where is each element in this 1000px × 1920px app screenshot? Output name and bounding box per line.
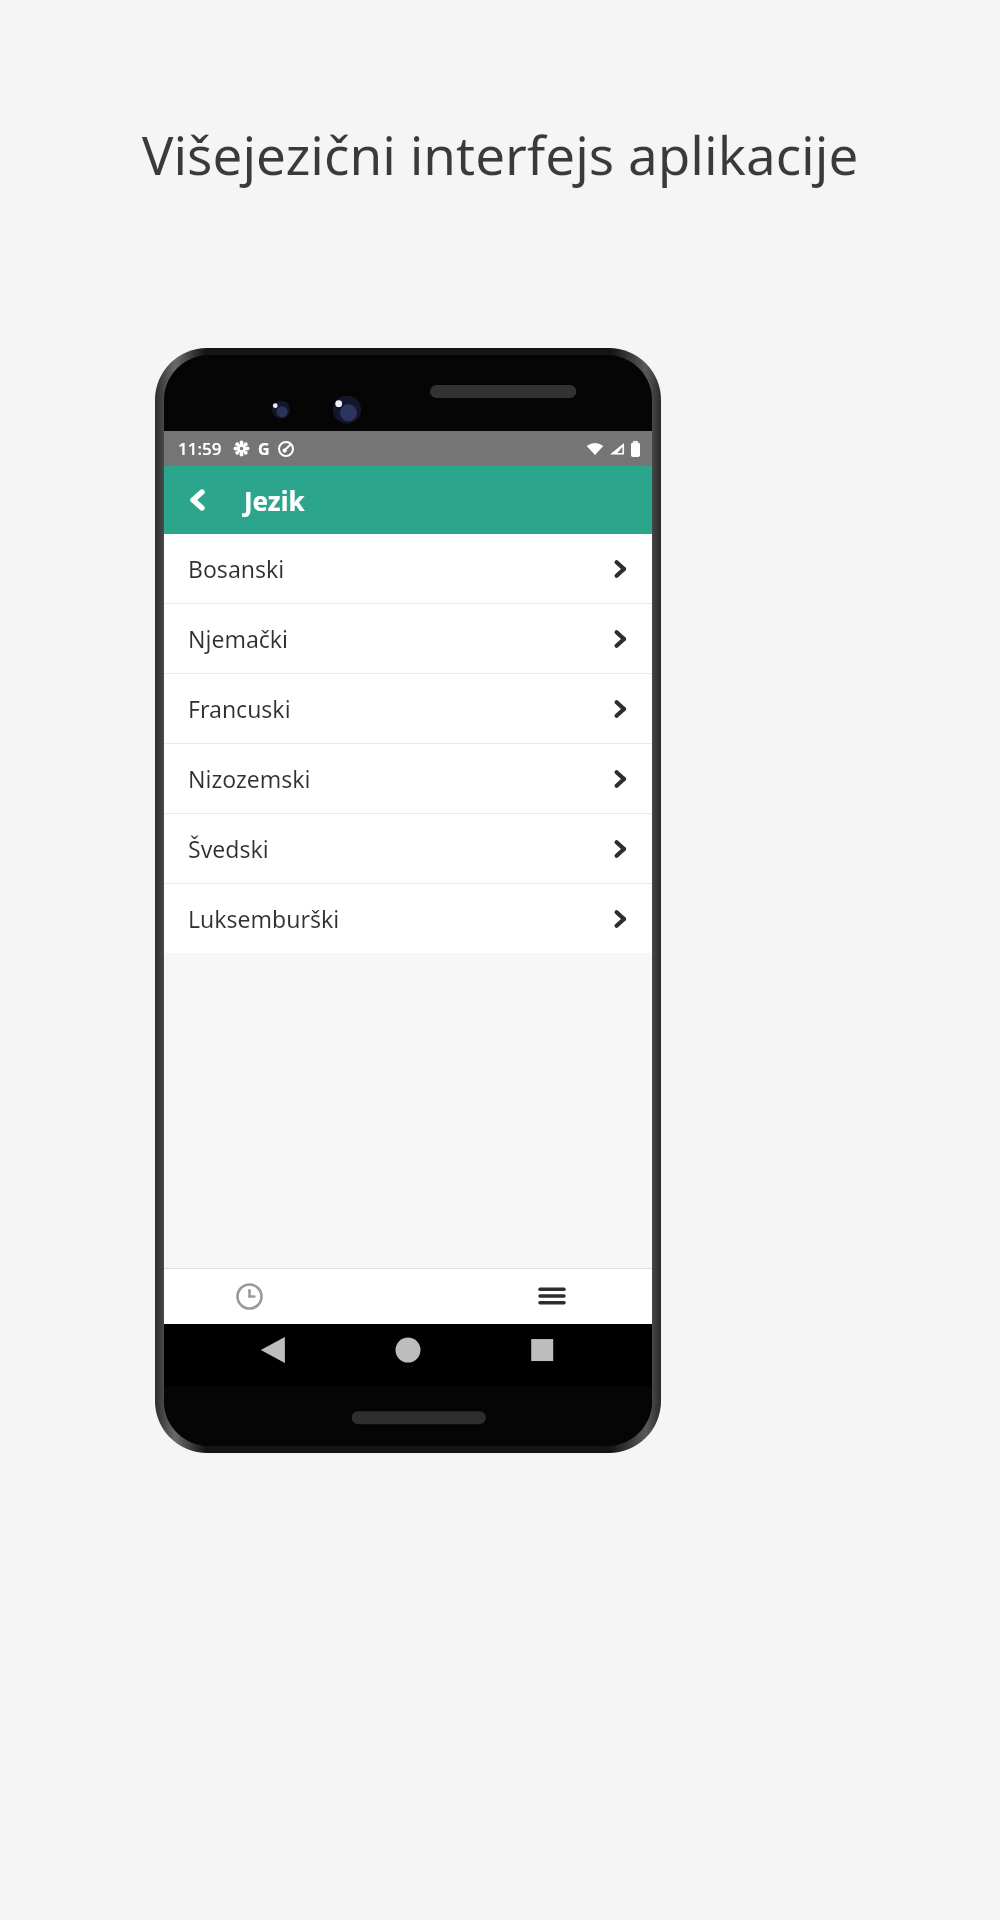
staticText: Bosanski [188,553,285,584]
button[interactable]: Luksemburški [164,884,652,953]
staticText: Švedski [188,833,269,864]
button[interactable]: Njemački [164,604,652,673]
button[interactable]: Bosanski [164,534,652,603]
staticText: Višejezični interfejs aplikacije [90,118,910,190]
staticText: Jezik [244,483,305,518]
button[interactable]: History [225,1272,273,1320]
button[interactable]: Francuski [164,674,652,743]
button[interactable]: Menu [528,1272,576,1320]
staticText: G [258,438,270,460]
button[interactable]: Nizozemski [164,744,652,813]
staticText: Francuski [188,693,291,724]
staticText: Luksemburški [188,903,340,934]
staticText: Njemački [188,623,289,654]
button[interactable]: Švedski [164,814,652,883]
staticText: Nizozemski [188,763,311,794]
button[interactable]: Back [176,478,220,522]
staticText: 11:59 [178,437,222,460]
